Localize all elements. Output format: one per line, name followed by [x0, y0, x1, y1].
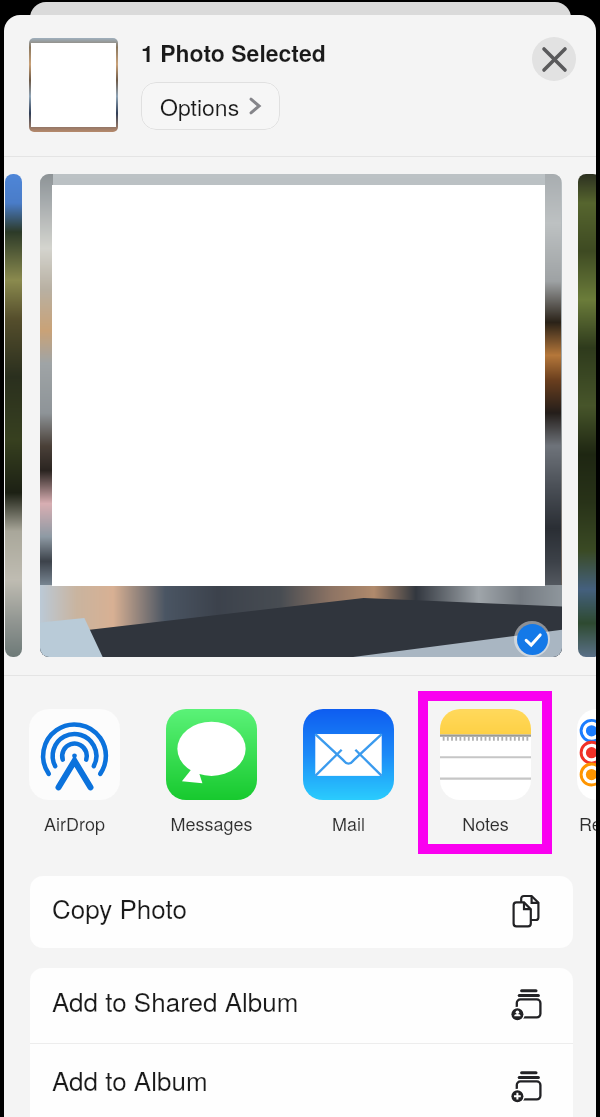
button[interactable]: Reminders	[577, 709, 596, 836]
staticText: AirDrop	[44, 810, 105, 836]
button[interactable]: Selected photo	[40, 174, 562, 657]
button[interactable]: Add to Album	[30, 1044, 573, 1117]
button[interactable]: AirDrop	[29, 709, 120, 836]
button[interactable]: Add to Shared Album	[30, 968, 573, 1043]
button[interactable]: Messages	[166, 709, 257, 836]
button[interactable]: Notes	[440, 709, 531, 836]
staticText: Reminders	[579, 810, 596, 836]
button[interactable]: Options	[141, 82, 280, 130]
staticText: Mail	[332, 810, 365, 836]
button[interactable]: Previous photo	[5, 174, 22, 657]
staticText: 1 Photo Selected	[141, 36, 326, 69]
button[interactable]: Next photo	[578, 174, 596, 657]
staticText: Options	[160, 90, 240, 123]
staticText: Messages	[170, 810, 253, 836]
staticText: Add to Album	[52, 1061, 208, 1098]
button[interactable]: Copy Photo	[30, 876, 573, 948]
button[interactable]: Close	[532, 37, 576, 81]
staticText: Notes	[462, 810, 509, 836]
staticText: Copy Photo	[52, 889, 187, 926]
button[interactable]: Selected photo thumbnail	[29, 38, 118, 132]
button[interactable]: Mail	[303, 709, 394, 836]
staticText: Add to Shared Album	[52, 982, 299, 1019]
